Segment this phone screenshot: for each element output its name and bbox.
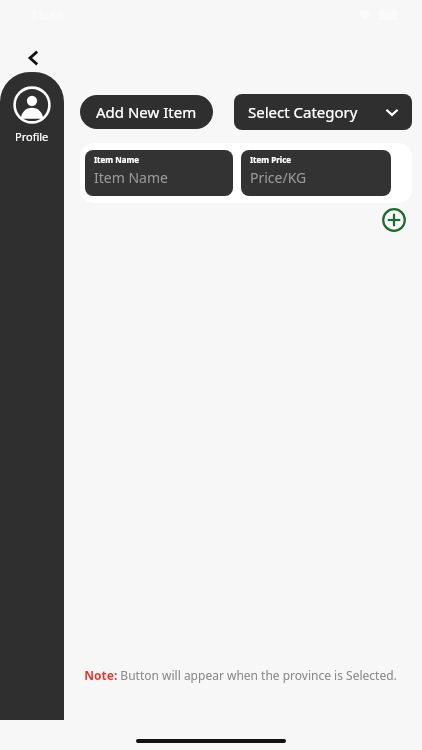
button[interactable]: Item Name — [85, 150, 233, 196]
button[interactable]: Add New Item — [80, 95, 213, 129]
staticText: Item Price — [250, 154, 292, 165]
button[interactable]: Select Category — [234, 94, 412, 130]
staticText: Item Name — [94, 168, 168, 187]
staticText: Add New Item — [96, 102, 197, 122]
staticText: Note: Button will appear when the provin… — [84, 667, 397, 683]
staticText: Price/KG — [250, 168, 307, 187]
staticText: Select Category — [248, 102, 358, 122]
staticText: Profile — [15, 129, 49, 144]
button[interactable]: Back — [16, 40, 52, 76]
button[interactable]: Profile — [0, 86, 64, 144]
button[interactable]: Item Price — [241, 150, 391, 196]
staticText: Item Name — [94, 154, 140, 165]
button[interactable]: Add item — [380, 206, 408, 234]
